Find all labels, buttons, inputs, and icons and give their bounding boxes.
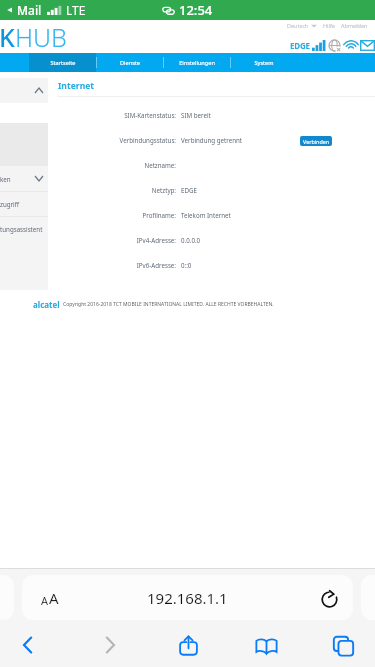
staticText: LTE [66, 2, 86, 18]
button[interactable]: Bookmarks [245, 625, 287, 665]
staticText: A [49, 588, 59, 608]
button[interactable] [0, 78, 48, 103]
button[interactable]: Share [167, 625, 209, 665]
button[interactable]: Text size [22, 575, 353, 620]
button[interactable]: Forward [89, 625, 131, 665]
other: Messages [360, 40, 375, 51]
staticText: Verbinden [303, 138, 330, 145]
staticText: Verbindung getrennt [181, 136, 243, 144]
staticText: 0.0.0.0 [181, 236, 201, 244]
button[interactable]: Reload [317, 586, 341, 610]
staticText: Profilname: [0, 211, 176, 219]
other: No internet [328, 39, 341, 52]
staticText: Telekom Internet [181, 211, 231, 219]
staticText: Dienste [120, 59, 140, 67]
button[interactable]: zugriff [0, 191, 48, 216]
staticText: Internet [58, 80, 95, 92]
button[interactable]: tungsassistent [0, 216, 48, 241]
button[interactable]: ken [0, 166, 48, 191]
staticText: SIM bereit [181, 111, 211, 119]
staticText: tungsassistent [0, 225, 43, 233]
button[interactable]: Hilfe [323, 22, 335, 29]
other: Link [162, 5, 175, 16]
button[interactable]: Deutsch [287, 22, 309, 29]
button[interactable]: Back [7, 625, 49, 665]
button[interactable]: Abmelden [341, 22, 368, 29]
staticText: Copyright 2016-2018 TCT MOBILE INTERNATI… [63, 301, 274, 308]
staticText: HUB [15, 20, 67, 53]
staticText: Verbindungsstatus: [0, 136, 176, 144]
staticText: EDGE [290, 40, 310, 51]
other: WiFi [344, 40, 358, 51]
staticText: zugriff [0, 200, 19, 208]
button[interactable]: Verbinden [300, 136, 332, 146]
staticText: Startseite [50, 59, 76, 67]
button[interactable]: Text size [41, 588, 59, 608]
staticText: 12:54 [179, 1, 213, 19]
button[interactable]: Startseite [29, 53, 96, 72]
staticText: EDGE [181, 186, 197, 194]
staticText: 192.168.1.1 [147, 588, 228, 608]
button[interactable]: Dienste [96, 53, 163, 72]
staticText: Mail [17, 2, 42, 18]
staticText: A [41, 593, 49, 608]
staticText: System [254, 59, 274, 67]
staticText: SIM-Kartenstatus: [0, 111, 176, 119]
staticText: alcatel [33, 299, 60, 310]
staticText: Netzname: [0, 161, 176, 169]
staticText: 0::0 [181, 261, 192, 269]
staticText: IPv4-Adresse: [0, 236, 176, 244]
staticText: Einstellungen [179, 59, 215, 67]
button[interactable]: Tabs [322, 625, 364, 665]
button[interactable]: Einstellungen [163, 53, 230, 72]
staticText: K [0, 20, 15, 53]
staticText: Netztyp: [0, 186, 176, 194]
button[interactable]: System [230, 53, 297, 72]
staticText: IPv6-Adresse: [0, 261, 176, 269]
staticText: ken [0, 175, 11, 183]
